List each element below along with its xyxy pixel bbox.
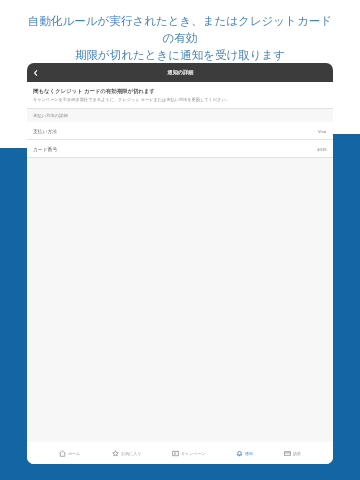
- staticText: Visa: [318, 128, 327, 134]
- button[interactable]: 戻る: [27, 64, 45, 82]
- staticText: カード番号: [33, 146, 58, 152]
- button[interactable]: 請求: [282, 448, 303, 459]
- staticText: 通知: [245, 451, 253, 456]
- button[interactable]: ホーム: [57, 448, 83, 459]
- button[interactable]: 支払い方法: [27, 122, 333, 139]
- button[interactable]: カード番号: [27, 140, 333, 157]
- staticText: ホーム: [68, 451, 81, 456]
- staticText: 支払い方法: [33, 128, 58, 134]
- button[interactable]: お気に入り: [110, 448, 144, 459]
- staticText: 支払い方法の詳細: [33, 113, 68, 118]
- staticText: 自動化ルールが実行されたとき、またはクレジットカードの有効 期限が切れたときに通…: [24, 14, 336, 62]
- staticText: キャンペーン: [181, 451, 206, 456]
- button[interactable]: キャンペーン: [170, 448, 208, 459]
- staticText: キャンペーンを引き続き実行できるように、クレジット カードまたは支払い方法を更新…: [33, 97, 230, 103]
- staticText: 4035: [317, 146, 327, 152]
- staticText: 請求: [293, 451, 301, 456]
- staticText: 通知の詳細: [167, 69, 194, 76]
- staticText: お気に入り: [121, 451, 142, 456]
- staticText: 間もなくクレジット カードの有効期限が切れます: [33, 87, 155, 94]
- button[interactable]: 通知: [234, 448, 255, 459]
